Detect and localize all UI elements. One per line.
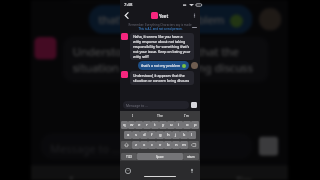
button[interactable]: Understood, it appears that the situatio… <box>130 71 194 85</box>
button[interactable]: Message to ... <box>41 133 252 159</box>
button[interactable]: that's a not my problem <box>89 5 252 34</box>
button[interactable]: More options <box>191 12 198 19</box>
staticText: p <box>194 122 197 128</box>
staticText: h <box>167 132 170 138</box>
button[interactable]: I <box>120 111 146 120</box>
staticText: b <box>167 142 170 148</box>
staticText: v <box>159 142 162 148</box>
staticText: r <box>146 122 148 128</box>
button[interactable]: s <box>132 131 140 139</box>
button[interactable]: Voice input <box>189 168 195 174</box>
button[interactable]: x <box>140 141 148 149</box>
staticText: Understood, it appears that the situatio… <box>73 43 259 75</box>
staticText: z <box>135 142 137 148</box>
button[interactable]: I'm <box>173 111 200 120</box>
staticText: I <box>132 113 134 118</box>
button[interactable]: z <box>132 141 140 149</box>
staticText: The <box>150 172 169 180</box>
staticText: n <box>175 142 178 148</box>
button[interactable]: b <box>164 141 172 149</box>
button[interactable]: Emoji <box>125 168 131 174</box>
staticText: that's a not my problem <box>141 63 181 68</box>
staticText: Space <box>156 155 164 159</box>
button[interactable]: Back <box>122 11 131 20</box>
staticText: a <box>127 132 130 138</box>
button[interactable]: u <box>167 121 175 129</box>
staticText: d <box>143 132 146 138</box>
staticText: e <box>138 122 141 128</box>
button[interactable]: Haha, it seems like you have a witty res… <box>63 0 268 2</box>
button[interactable]: w <box>128 121 135 129</box>
staticText: g <box>159 132 162 138</box>
staticText: The <box>157 113 163 118</box>
button[interactable]: e <box>135 121 143 129</box>
staticText: f <box>151 132 153 138</box>
button[interactable]: Send <box>191 102 197 108</box>
staticText: Haha, it seems like you have a witty res… <box>133 34 191 59</box>
button[interactable]: n <box>172 141 180 149</box>
staticText: m <box>182 142 186 148</box>
staticText: Understood, it appears that the situatio… <box>133 73 191 83</box>
staticText: ?123 <box>126 155 132 159</box>
staticText: o <box>186 122 189 128</box>
button[interactable]: Send <box>259 136 278 156</box>
button[interactable]: m <box>180 141 188 149</box>
staticText: c <box>151 142 154 148</box>
staticText: t <box>154 122 156 128</box>
button[interactable]: k <box>180 131 188 139</box>
button[interactable]: q <box>121 121 128 129</box>
button[interactable]: Message to ... <box>123 101 189 109</box>
staticText: This is A.I. and not a real person. <box>138 27 183 31</box>
staticText: I'm <box>184 113 189 118</box>
button[interactable]: j <box>172 131 180 139</box>
staticText: j <box>175 132 177 138</box>
button[interactable]: h <box>164 131 172 139</box>
button[interactable]: Understood, it appears that the situatio… <box>63 37 268 82</box>
staticText: return <box>187 155 195 159</box>
button[interactable]: that's a not my problem <box>138 61 189 70</box>
button[interactable]: Dismiss <box>192 25 197 30</box>
button[interactable]: v <box>156 141 164 149</box>
button[interactable]: r <box>143 121 151 129</box>
staticText: I <box>69 172 76 180</box>
staticText: u <box>170 122 173 128</box>
staticText: i <box>178 122 180 128</box>
button[interactable]: o <box>183 121 191 129</box>
staticText: k <box>183 132 186 138</box>
button[interactable]: Space <box>137 153 183 160</box>
staticText: 7:48 <box>124 2 133 8</box>
button[interactable]: Backspace <box>188 141 199 149</box>
staticText: Message to ... <box>50 140 121 156</box>
button[interactable]: ?123 <box>121 153 137 160</box>
button[interactable]: return <box>183 153 199 160</box>
button[interactable]: i <box>175 121 183 129</box>
button[interactable]: The <box>114 165 201 180</box>
staticText: Yeet <box>159 13 169 19</box>
button[interactable]: y <box>159 121 167 129</box>
staticText: q <box>123 122 126 128</box>
button[interactable]: l <box>188 131 196 139</box>
button[interactable]: d <box>140 131 148 139</box>
staticText: I'm <box>236 172 252 180</box>
staticText: y <box>162 122 165 128</box>
staticText: l <box>191 132 193 138</box>
button[interactable]: Haha, it seems like you have a witty res… <box>130 33 194 60</box>
staticText: that's a not my problem <box>98 11 227 27</box>
staticText: Message to ... <box>126 103 148 108</box>
button[interactable]: f <box>148 131 156 139</box>
button[interactable]: Shift <box>121 141 132 149</box>
button[interactable]: g <box>156 131 164 139</box>
staticText: x <box>143 142 146 148</box>
button[interactable]: t <box>151 121 159 129</box>
button[interactable]: c <box>148 141 156 149</box>
button[interactable]: The <box>146 111 173 120</box>
button[interactable]: a <box>124 131 132 139</box>
button[interactable]: p <box>191 121 199 129</box>
staticText: s <box>135 132 138 138</box>
staticText: w <box>130 122 134 128</box>
staticText: Remember: Everything Characters say is m… <box>128 23 192 27</box>
